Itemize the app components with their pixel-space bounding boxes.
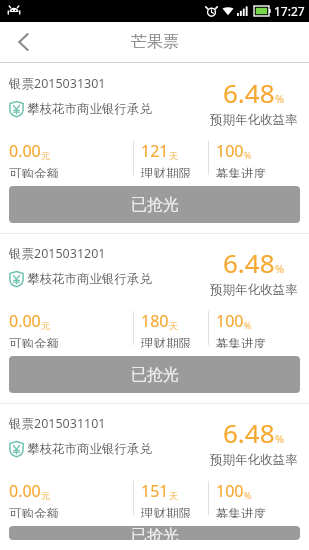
button[interactable]: 银票2015031201 [0,234,309,403]
button[interactable]: Back [0,22,46,62]
staticText: 元 [41,320,50,331]
staticText: 151 [141,480,169,502]
staticText: 理财期限 [141,166,191,178]
button[interactable]: 已抢光 [9,526,300,540]
staticText: 元 [41,150,50,161]
staticText: 6.48 [223,415,275,450]
staticText: 预期年化收益率 [210,112,298,128]
staticText: 已抢光 [131,526,179,540]
staticText: % [275,431,285,446]
button[interactable]: 银票2015031101 [0,404,309,550]
staticText: 0.00 [9,140,41,162]
staticText: 攀枝花市商业银行承兑 [27,271,152,287]
staticText: 已抢光 [131,195,179,215]
staticText: 天 [169,320,178,331]
staticText: 100 [216,310,244,332]
button[interactable]: 已抢光 [9,356,300,393]
staticText: 121 [141,140,169,162]
staticText: 预期年化收益率 [210,282,298,298]
staticText: 募集进度 [216,166,266,178]
staticText: 0.00 [9,480,41,502]
staticText: 银票2015031301 [9,75,106,92]
staticText: % [275,261,285,276]
staticText: % [244,149,252,161]
staticText: 天 [169,150,178,161]
staticText: 元 [41,490,50,501]
staticText: % [244,489,252,501]
staticText: 募集进度 [216,506,266,518]
staticText: 100 [216,480,244,502]
staticText: 可购金额 [9,506,59,518]
staticText: 可购金额 [9,336,59,348]
staticText: 6.48 [223,245,275,280]
staticText: 预期年化收益率 [210,452,298,468]
staticText: 理财期限 [141,336,191,348]
staticText: 银票2015031201 [9,245,106,262]
button[interactable]: 已抢光 [9,186,300,223]
staticText: 天 [169,490,178,501]
staticText: 募集进度 [216,336,266,348]
staticText: 攀枝花市商业银行承兑 [27,101,152,117]
staticText: 17:27 [274,3,305,19]
staticText: 银票2015031101 [9,415,106,432]
staticText: 芒果票 [131,32,179,52]
staticText: 可购金额 [9,166,59,178]
staticText: 6.48 [223,75,275,110]
staticText: % [244,319,252,331]
button[interactable]: 银票2015031301 [0,64,309,233]
staticText: 0.00 [9,310,41,332]
staticText: 理财期限 [141,506,191,518]
staticText: % [275,91,285,106]
staticText: 180 [141,310,169,332]
staticText: 攀枝花市商业银行承兑 [27,441,152,457]
staticText: 100 [216,140,244,162]
staticText: 已抢光 [131,365,179,385]
